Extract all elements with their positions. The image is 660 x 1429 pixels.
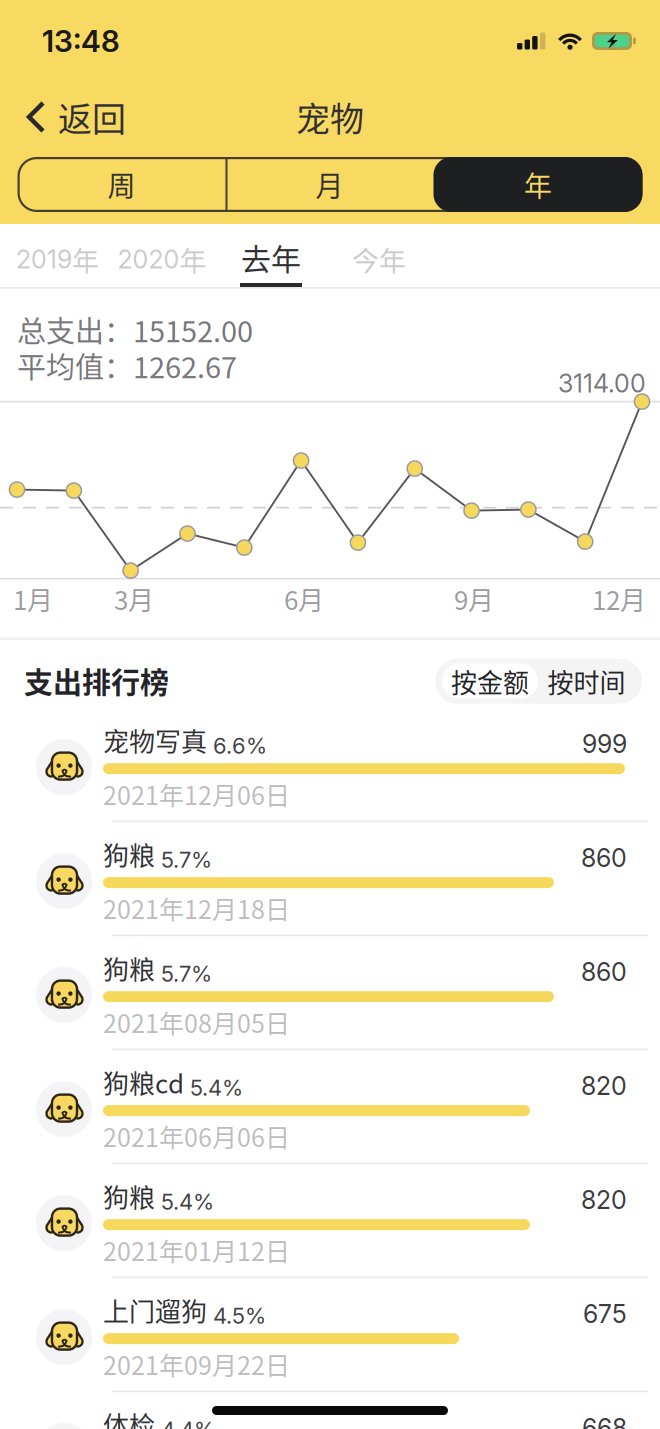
- staticText: 狗粮: [103, 835, 155, 873]
- staticText: 今年: [352, 240, 406, 279]
- staticText: 675: [583, 1299, 627, 1329]
- staticText: 999: [582, 729, 627, 759]
- staticText: 总支出：15152.00: [17, 309, 253, 351]
- staticText: 周: [107, 164, 135, 205]
- button[interactable]: 狗粮: [0, 936, 660, 1050]
- staticText: 860: [581, 957, 627, 987]
- button[interactable]: 年: [433, 157, 642, 212]
- staticText: 668: [582, 1413, 627, 1429]
- staticText: 5.7%: [155, 960, 212, 987]
- button[interactable]: 体检: [0, 1392, 660, 1429]
- button[interactable]: 狗粮: [0, 1164, 660, 1278]
- staticText: 按金额: [451, 662, 529, 700]
- staticText: 2020: [117, 244, 179, 274]
- staticText: 5.4%: [184, 1074, 243, 1101]
- button[interactable]: 周: [17, 157, 225, 212]
- staticText: 体检: [103, 1405, 155, 1429]
- button[interactable]: 宠物写真: [0, 708, 660, 822]
- staticText: 宠物写真: [103, 721, 207, 759]
- button[interactable]: 按金额: [442, 664, 538, 699]
- staticText: 6.6%: [207, 732, 267, 759]
- button[interactable]: 返回: [0, 99, 140, 135]
- button[interactable]: 今年: [327, 224, 431, 287]
- staticText: 12月: [592, 580, 646, 617]
- staticText: 860: [581, 843, 627, 873]
- staticText: 年: [72, 240, 99, 279]
- staticText: 1月: [13, 580, 53, 617]
- staticText: 4.4%: [155, 1416, 215, 1429]
- staticText: 狗粮: [103, 949, 155, 987]
- button[interactable]: 月: [225, 157, 433, 212]
- staticText: 2019: [16, 244, 72, 274]
- staticText: 6月: [284, 580, 324, 617]
- staticText: 3114.00: [558, 368, 646, 399]
- staticText: 按时间: [547, 662, 625, 700]
- staticText: 5.7%: [155, 846, 212, 873]
- button[interactable]: 上门遛狗: [0, 1278, 660, 1392]
- staticText: 2021年12月06日: [103, 776, 290, 812]
- staticText: 2021年01月12日: [103, 1232, 290, 1268]
- staticText: 狗粮: [103, 1177, 155, 1215]
- staticText: 去年: [241, 236, 301, 279]
- button[interactable]: 去年: [215, 224, 327, 287]
- button[interactable]: 按时间: [538, 664, 635, 699]
- staticText: 月: [315, 164, 343, 205]
- button[interactable]: 狗粮cd: [0, 1050, 660, 1164]
- staticText: 平均值：1262.67: [17, 345, 237, 387]
- staticText: 9月: [454, 580, 494, 617]
- staticText: 820: [581, 1185, 627, 1215]
- button[interactable]: 狗粮: [0, 822, 660, 936]
- staticText: 狗粮cd: [103, 1063, 184, 1101]
- button[interactable]: 2019: [6, 224, 109, 287]
- staticText: 820: [581, 1071, 627, 1101]
- staticText: 4.5%: [207, 1302, 266, 1329]
- staticText: 5.4%: [155, 1188, 214, 1215]
- staticText: 返回: [58, 92, 126, 142]
- staticText: 支出排行榜: [24, 660, 169, 702]
- staticText: 13:48: [42, 23, 120, 59]
- staticText: 年: [179, 240, 206, 279]
- staticText: 上门遛狗: [103, 1291, 207, 1329]
- staticText: 宠物: [296, 92, 364, 142]
- staticText: 年: [524, 164, 552, 205]
- staticText: 2021年09月22日: [103, 1346, 290, 1382]
- staticText: 2021年08月05日: [103, 1004, 290, 1040]
- staticText: 2021年06月06日: [103, 1118, 290, 1154]
- staticText: 2021年12月18日: [103, 890, 290, 926]
- staticText: 3月: [114, 580, 154, 617]
- button[interactable]: 2020: [109, 224, 215, 287]
